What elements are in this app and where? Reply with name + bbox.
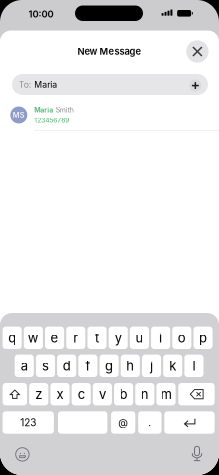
staticText: Maria — [34, 79, 57, 90]
button[interactable]: d — [57, 355, 76, 377]
staticText: Smith — [56, 106, 74, 114]
staticText: 123 — [20, 416, 36, 429]
staticText: b — [120, 386, 128, 402]
staticText: m — [160, 386, 171, 402]
staticText: To: — [19, 79, 31, 90]
staticText: d — [63, 358, 71, 374]
staticText: Maria — [34, 106, 53, 114]
button[interactable]: j — [142, 355, 161, 377]
button[interactable]: z — [29, 383, 48, 405]
button[interactable]: Emoji — [16, 448, 29, 461]
button[interactable]: v — [93, 383, 112, 405]
button[interactable]: Delete — [178, 383, 215, 405]
button[interactable]: . — [138, 411, 161, 434]
staticText: s — [42, 358, 49, 374]
staticText: . — [148, 416, 151, 429]
staticText: q — [8, 330, 16, 346]
button[interactable]: Dictate — [190, 444, 204, 464]
staticText: 123456789 — [34, 116, 69, 124]
button[interactable]: a — [15, 355, 34, 377]
staticText: f — [85, 358, 90, 374]
staticText: x — [56, 386, 63, 402]
button[interactable]: n — [135, 383, 154, 405]
button[interactable]: f — [78, 355, 97, 377]
button[interactable]: Add contact — [189, 79, 201, 92]
button[interactable]: return — [164, 411, 215, 434]
button[interactable]: b — [114, 383, 133, 405]
staticText: t — [95, 330, 99, 346]
button[interactable]: p — [193, 327, 213, 349]
staticText: z — [35, 386, 42, 402]
button[interactable]: MS — [0, 99, 219, 130]
button[interactable]: Close — [186, 40, 209, 63]
staticText: New Message — [77, 46, 141, 57]
button[interactable]: y — [109, 327, 128, 349]
staticText: a — [21, 358, 28, 374]
staticText: p — [199, 330, 207, 346]
staticText: h — [126, 358, 134, 374]
button[interactable]: m — [156, 383, 176, 405]
button[interactable]: h — [121, 355, 140, 377]
button[interactable]: space — [58, 411, 107, 434]
staticText: 10:00 — [28, 8, 53, 20]
button[interactable]: s — [36, 355, 55, 377]
staticText: e — [51, 330, 59, 346]
staticText: c — [78, 386, 85, 402]
button[interactable]: u — [130, 327, 149, 349]
staticText: y — [115, 330, 122, 346]
staticText: v — [99, 386, 106, 402]
staticText: n — [141, 386, 149, 402]
button[interactable]: g — [99, 355, 119, 377]
staticText: w — [28, 330, 39, 346]
button[interactable]: 123 — [3, 411, 54, 434]
button[interactable]: Shift — [3, 383, 27, 405]
staticText: l — [192, 358, 195, 374]
staticText: k — [169, 358, 176, 374]
staticText: @ — [118, 416, 128, 429]
button[interactable]: c — [72, 383, 91, 405]
button[interactable]: o — [172, 327, 191, 349]
button[interactable]: x — [50, 383, 69, 405]
button[interactable]: l — [184, 355, 203, 377]
staticText: g — [105, 358, 113, 374]
button[interactable]: k — [163, 355, 182, 377]
staticText: u — [135, 330, 143, 346]
staticText: j — [150, 358, 153, 374]
staticText: o — [178, 330, 186, 346]
button[interactable]: i — [151, 327, 170, 349]
button[interactable]: e — [45, 327, 64, 349]
button[interactable]: t — [87, 327, 106, 349]
staticText: MS — [13, 111, 25, 119]
button[interactable]: @ — [111, 411, 135, 434]
staticText: i — [159, 330, 162, 346]
button[interactable]: w — [24, 327, 43, 349]
button[interactable]: r — [66, 327, 85, 349]
staticText: r — [73, 330, 78, 346]
button[interactable]: q — [3, 327, 22, 349]
